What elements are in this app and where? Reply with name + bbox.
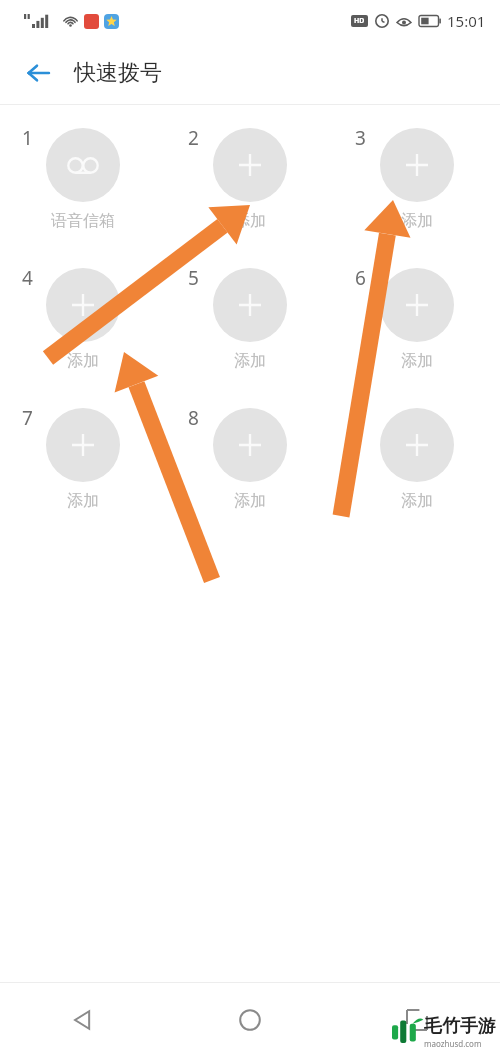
- button[interactable]: 添加: [213, 397, 287, 511]
- button[interactable]: Home: [166, 983, 333, 1057]
- staticText: 添加: [67, 351, 99, 371]
- button[interactable]: 添加: [380, 117, 454, 231]
- staticText: 添加: [401, 491, 433, 511]
- staticText: 添加: [234, 491, 266, 511]
- staticText: 语音信箱: [51, 211, 115, 231]
- staticText: 添加: [234, 351, 266, 371]
- button[interactable]: 添加: [213, 117, 287, 231]
- staticText: HD: [354, 16, 365, 26]
- staticText: 3: [355, 125, 366, 151]
- staticText: 添加: [401, 211, 433, 231]
- staticText: 5: [188, 265, 199, 291]
- staticText: 毛竹手游: [424, 1015, 496, 1038]
- staticText: 8: [188, 405, 199, 431]
- staticText: 1: [22, 125, 33, 151]
- staticText: 添加: [67, 491, 99, 511]
- button[interactable]: Back: [14, 49, 62, 97]
- staticText: 7: [22, 405, 33, 431]
- staticText: 9: [355, 405, 366, 431]
- button[interactable]: 添加: [213, 257, 287, 371]
- button[interactable]: 添加: [380, 257, 454, 371]
- button[interactable]: 添加: [46, 257, 120, 371]
- staticText: 4: [22, 265, 33, 291]
- staticText: 添加: [401, 351, 433, 371]
- button[interactable]: 添加: [380, 397, 454, 511]
- staticText: 快速拨号: [74, 59, 162, 87]
- staticText: 添加: [234, 211, 266, 231]
- button[interactable]: Recent apps: [333, 983, 500, 1057]
- button[interactable]: 添加: [46, 397, 120, 511]
- staticText: maozhusd.com: [424, 1038, 482, 1049]
- staticText: 6: [355, 265, 366, 291]
- staticText: 15:01: [447, 11, 486, 31]
- staticText: 2: [188, 125, 199, 151]
- button[interactable]: 语音信箱: [46, 117, 120, 231]
- button[interactable]: Back: [0, 983, 166, 1057]
